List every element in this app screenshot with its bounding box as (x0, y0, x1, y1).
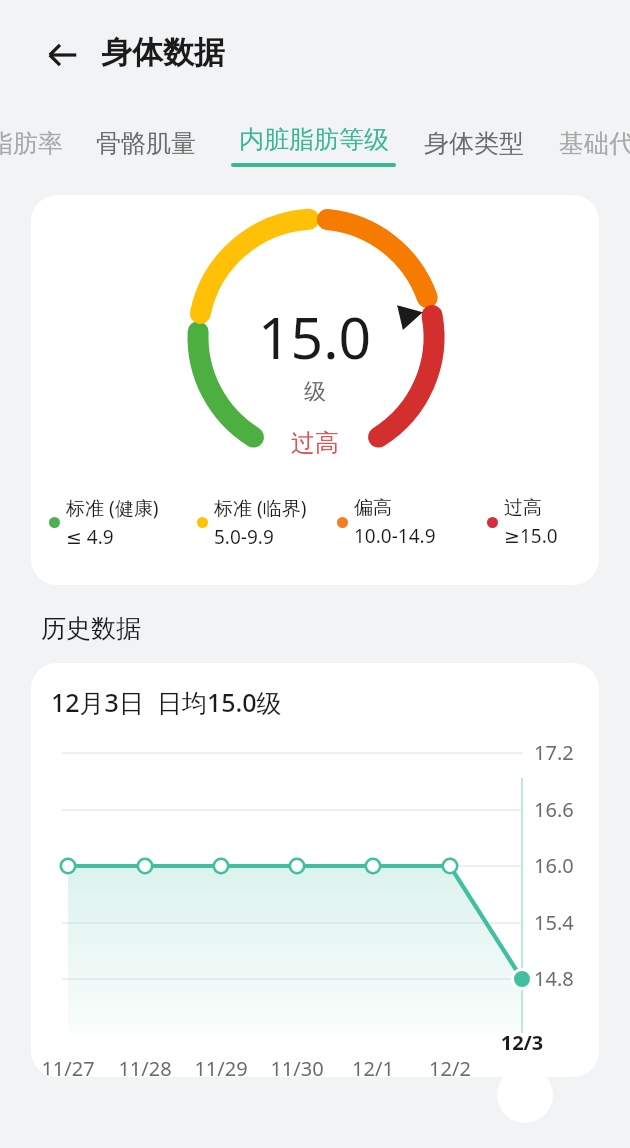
staticText: 11/28 (105, 1055, 185, 1077)
button[interactable]: 脂肪率 (0, 128, 63, 159)
staticText: 12/3 (482, 1029, 562, 1056)
button[interactable]: 12月3日 日均15.0级 (31, 663, 599, 1077)
staticText: 身体数据 (101, 33, 225, 72)
staticText: 级 (304, 378, 326, 406)
staticText: 16.6 (534, 796, 594, 823)
staticText: 10.0-14.9 (354, 523, 436, 549)
button[interactable]: Back (34, 27, 90, 83)
button[interactable]: 骨骼肌量 (96, 128, 196, 159)
button[interactable]: Add record (497, 1067, 553, 1123)
staticText: 15.0 (258, 298, 372, 376)
staticText: 过高 (504, 496, 542, 520)
staticText: 12/2 (410, 1055, 490, 1077)
staticText: 标准 (健康) (66, 495, 159, 521)
staticText: 历史数据 (41, 613, 141, 644)
staticText: 12/1 (333, 1055, 413, 1077)
staticText: 17.2 (534, 739, 594, 766)
button[interactable]: 15.0 (31, 195, 599, 585)
staticText: 11/30 (257, 1055, 337, 1077)
button[interactable]: 身体类型 (424, 128, 524, 159)
staticText: ≤ 4.9 (66, 524, 114, 550)
staticText: 16.0 (534, 852, 594, 879)
staticText: 11/27 (31, 1055, 108, 1077)
button[interactable]: 基础代 (559, 128, 630, 159)
staticText: 过高 (291, 428, 339, 458)
staticText: 标准 (临界) (214, 495, 307, 521)
staticText: 14.8 (534, 965, 594, 992)
staticText: ≥15.0 (504, 523, 558, 549)
staticText: 内脏脂肪等级 (239, 124, 389, 155)
staticText: 5.0-9.9 (214, 524, 274, 550)
staticText: 偏高 (354, 496, 392, 520)
staticText: 12月3日 日均15.0级 (51, 685, 282, 719)
button[interactable]: 内脏脂肪等级 (231, 124, 396, 167)
staticText: 15.4 (534, 909, 594, 936)
staticText: 11/29 (181, 1055, 261, 1077)
